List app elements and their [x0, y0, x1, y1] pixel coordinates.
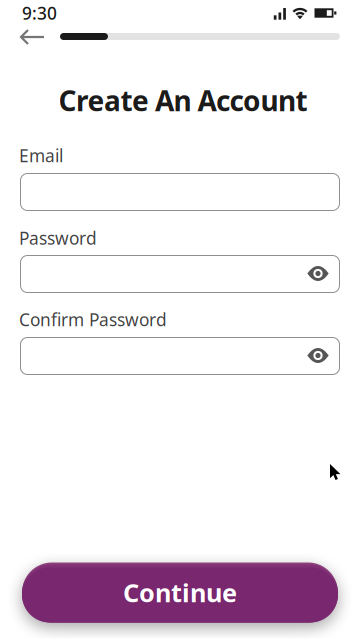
button[interactable]: Email — [20, 173, 340, 211]
staticText: Continue — [123, 576, 237, 609]
button[interactable]: Password — [20, 255, 340, 293]
button[interactable]: Confirm Password — [20, 337, 340, 375]
button[interactable]: Back — [13, 23, 49, 51]
staticText: Create An Account — [58, 82, 307, 119]
staticText: Password — [19, 226, 97, 249]
button[interactable]: Show confirm password — [303, 342, 333, 368]
staticText: Email — [19, 144, 63, 167]
button[interactable]: Continue — [22, 562, 338, 622]
button[interactable]: Show password — [303, 260, 333, 286]
staticText: 9:30 — [22, 1, 57, 24]
staticText: Confirm Password — [19, 308, 167, 331]
